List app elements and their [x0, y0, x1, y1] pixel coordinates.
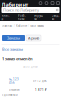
- staticText: Книги: [1, 14, 9, 21]
- staticText: Кабинет: [16, 24, 27, 28]
- staticText: /: [28, 24, 29, 28]
- staticText: Скидки: [51, 14, 59, 21]
- staticText: Поиск по Лабиринту: [3, 7, 39, 13]
- staticText: /: [14, 24, 15, 28]
- button[interactable]: № 123 456: [9, 77, 19, 85]
- button[interactable]: Книги: [1, 14, 9, 21]
- button[interactable]: Мои заказы: [30, 24, 44, 28]
- staticText: за 30 дней: [23, 65, 38, 68]
- button[interactable]: Игрушки: [34, 14, 43, 21]
- staticText: отменён: [9, 88, 20, 92]
- button[interactable]: Заказы: [2, 35, 25, 41]
- staticText: Заказы: [7, 35, 20, 41]
- staticText: с доставкой: [2, 93, 18, 97]
- staticText: 1 заказ отменён: [2, 56, 33, 61]
- staticText: Мои заказы: [30, 24, 44, 28]
- staticText: от 12 дек.: [33, 79, 47, 83]
- staticText: 1 871 ₽: [35, 88, 47, 92]
- button[interactable]: Архив: [26, 35, 41, 41]
- button[interactable]: Поиск по Лабиринту: [1, 7, 59, 13]
- button[interactable]: Скидки: [51, 14, 59, 21]
- staticText: Архив: [28, 35, 39, 41]
- button[interactable]: Главная: [1, 24, 12, 28]
- staticText: Лабиринт: [1, 1, 28, 8]
- staticText: Главная: [1, 24, 12, 28]
- staticText: Игрушки: [34, 14, 43, 21]
- staticText: Учебники: [18, 14, 26, 21]
- button[interactable]: Учебники: [18, 14, 26, 21]
- staticText: № 123 456: [9, 77, 19, 85]
- button[interactable]: Кабинет: [16, 24, 27, 28]
- button[interactable]: Все заказы: [2, 46, 23, 52]
- button[interactable]: Account: [39, 2, 42, 5]
- button[interactable]: Лабиринт: [1, 1, 28, 8]
- staticText: Все заказы: [2, 46, 23, 52]
- button[interactable]: Cart: [51, 2, 54, 5]
- button[interactable]: Menu: [56, 2, 59, 5]
- button[interactable]: Favorites: [45, 2, 48, 5]
